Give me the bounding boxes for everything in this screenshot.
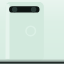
button[interactable]: Phone product photo (0, 0, 64, 64)
